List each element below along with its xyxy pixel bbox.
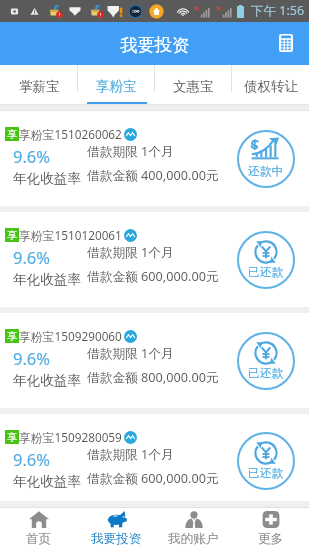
staticText: 享粉宝1510260062 xyxy=(19,126,122,142)
staticText: 享 xyxy=(7,229,17,242)
staticText: 享 xyxy=(7,431,17,444)
button[interactable]: 享 xyxy=(0,212,309,307)
staticText: 借款金额 600,000.00元 xyxy=(87,469,219,486)
button[interactable]: 享 xyxy=(0,414,309,507)
staticText: 享粉宝1509290060 xyxy=(19,328,122,344)
staticText: 享粉宝1510120061 xyxy=(19,227,122,243)
staticText: 文惠宝 xyxy=(173,78,214,95)
staticText: 9.6% xyxy=(13,448,51,470)
button[interactable]: 我的账户 xyxy=(155,508,232,550)
staticText: 享 xyxy=(7,128,17,141)
staticText: 年化收益率 xyxy=(13,473,81,490)
staticText: 我要投资 xyxy=(91,531,142,547)
staticText: 还款中 xyxy=(248,164,284,179)
staticText: 借款期限 1个月 xyxy=(87,243,174,260)
staticText: 享 xyxy=(7,330,17,343)
staticText: 借款期限 1个月 xyxy=(87,445,174,462)
staticText: 已还款 xyxy=(248,265,284,280)
staticText: 我要投资 xyxy=(120,34,190,56)
staticText: 借款金额 400,000.00元 xyxy=(87,166,219,183)
staticText: 年化收益率 xyxy=(13,271,81,288)
staticText: 债权转让 xyxy=(244,78,298,95)
staticText: 掌薪宝 xyxy=(19,78,60,95)
staticText: 下午 1:56 xyxy=(251,2,305,19)
button[interactable]: 债权转让 xyxy=(232,65,309,105)
staticText: 9.6% xyxy=(13,347,51,369)
staticText: 借款期限 1个月 xyxy=(87,344,174,361)
button[interactable]: 更多 xyxy=(232,508,309,550)
staticText: 借款期限 1个月 xyxy=(87,142,174,159)
staticText: 享粉宝 xyxy=(96,78,137,95)
button[interactable]: 文惠宝 xyxy=(155,65,232,105)
staticText: 已还款 xyxy=(248,466,284,481)
staticText: 首页 xyxy=(26,531,52,547)
button[interactable]: 掌薪宝 xyxy=(0,65,78,105)
staticText: 9.6% xyxy=(13,246,51,268)
staticText: 年化收益率 xyxy=(13,170,81,187)
staticText: 借款金额 800,000.00元 xyxy=(87,368,219,385)
button[interactable]: 享 xyxy=(0,313,309,408)
button[interactable]: 享粉宝 xyxy=(78,65,155,105)
button[interactable]: 首页 xyxy=(0,508,78,550)
staticText: 年化收益率 xyxy=(13,372,81,389)
staticText: 我的账户 xyxy=(168,531,219,547)
staticText: 9.6% xyxy=(13,145,51,167)
button[interactable]: 我要投资 xyxy=(78,508,155,550)
staticText: 已还款 xyxy=(248,366,284,381)
staticText: 更多 xyxy=(258,531,284,547)
staticText: 借款金额 600,000.00元 xyxy=(87,267,219,284)
staticText: 享粉宝1509280059 xyxy=(19,429,122,445)
button[interactable]: 享 xyxy=(0,111,309,206)
button[interactable]: Calculator xyxy=(269,27,303,61)
